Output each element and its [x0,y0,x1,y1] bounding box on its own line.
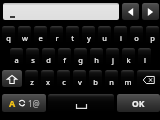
button[interactable]: Next [142,3,159,20]
staticText: w [22,33,28,43]
staticText: v [78,77,82,87]
button[interactable] [3,3,119,20]
button[interactable]: t [66,26,79,43]
staticText: t [71,33,74,43]
button[interactable]: d [42,48,55,65]
button[interactable]: Backspace [137,70,160,87]
button[interactable]: Space [48,94,114,112]
staticText: 1@ [28,98,40,109]
button[interactable]: w [18,26,31,43]
button[interactable]: g [74,48,87,65]
button[interactable]: v [73,70,86,87]
button[interactable]: a [10,48,23,65]
staticText: c [62,77,66,87]
button[interactable]: i [114,26,127,43]
button[interactable]: o [130,26,143,43]
staticText: j [112,55,114,65]
button[interactable]: f [58,48,71,65]
button[interactable]: k [122,48,135,65]
button[interactable]: h [90,48,103,65]
button[interactable]: j [106,48,119,65]
staticText: A [9,97,16,109]
button[interactable]: e [34,26,47,43]
staticText: o [134,33,139,43]
button[interactable]: r [50,26,63,43]
button[interactable]: c [57,70,70,87]
button[interactable]: y [82,26,95,43]
staticText: i [120,33,122,43]
staticText: OK [132,98,145,110]
button[interactable]: u [98,26,111,43]
staticText: r [55,33,59,43]
button[interactable]: Previous [122,3,139,20]
button[interactable]: x [41,70,54,87]
button[interactable]: b [89,70,102,87]
staticText: f [63,55,66,65]
staticText: m [124,77,132,87]
staticText: g [78,55,83,65]
button[interactable]: l [138,48,151,65]
staticText: k [126,55,131,65]
button[interactable]: s [26,48,39,65]
staticText: x [46,77,50,87]
staticText: u [102,33,107,43]
staticText: n [109,77,114,87]
button[interactable]: n [105,70,118,87]
button[interactable]: Shift [2,70,22,87]
staticText: b [93,77,98,87]
staticText: a [14,55,19,65]
staticText: q [6,33,11,43]
staticText: d [46,55,51,65]
staticText: y [87,33,91,43]
staticText: s [31,55,35,65]
staticText: e [38,33,43,43]
button[interactable]: Change input language [2,94,46,112]
staticText: l [144,55,146,65]
button[interactable]: z [25,70,38,87]
button[interactable]: p [146,26,159,43]
button[interactable]: q [2,26,15,43]
staticText: h [94,55,99,65]
staticText: p [150,33,155,43]
button[interactable]: OK [117,94,160,112]
button[interactable]: m [121,70,134,87]
staticText: z [30,77,34,87]
